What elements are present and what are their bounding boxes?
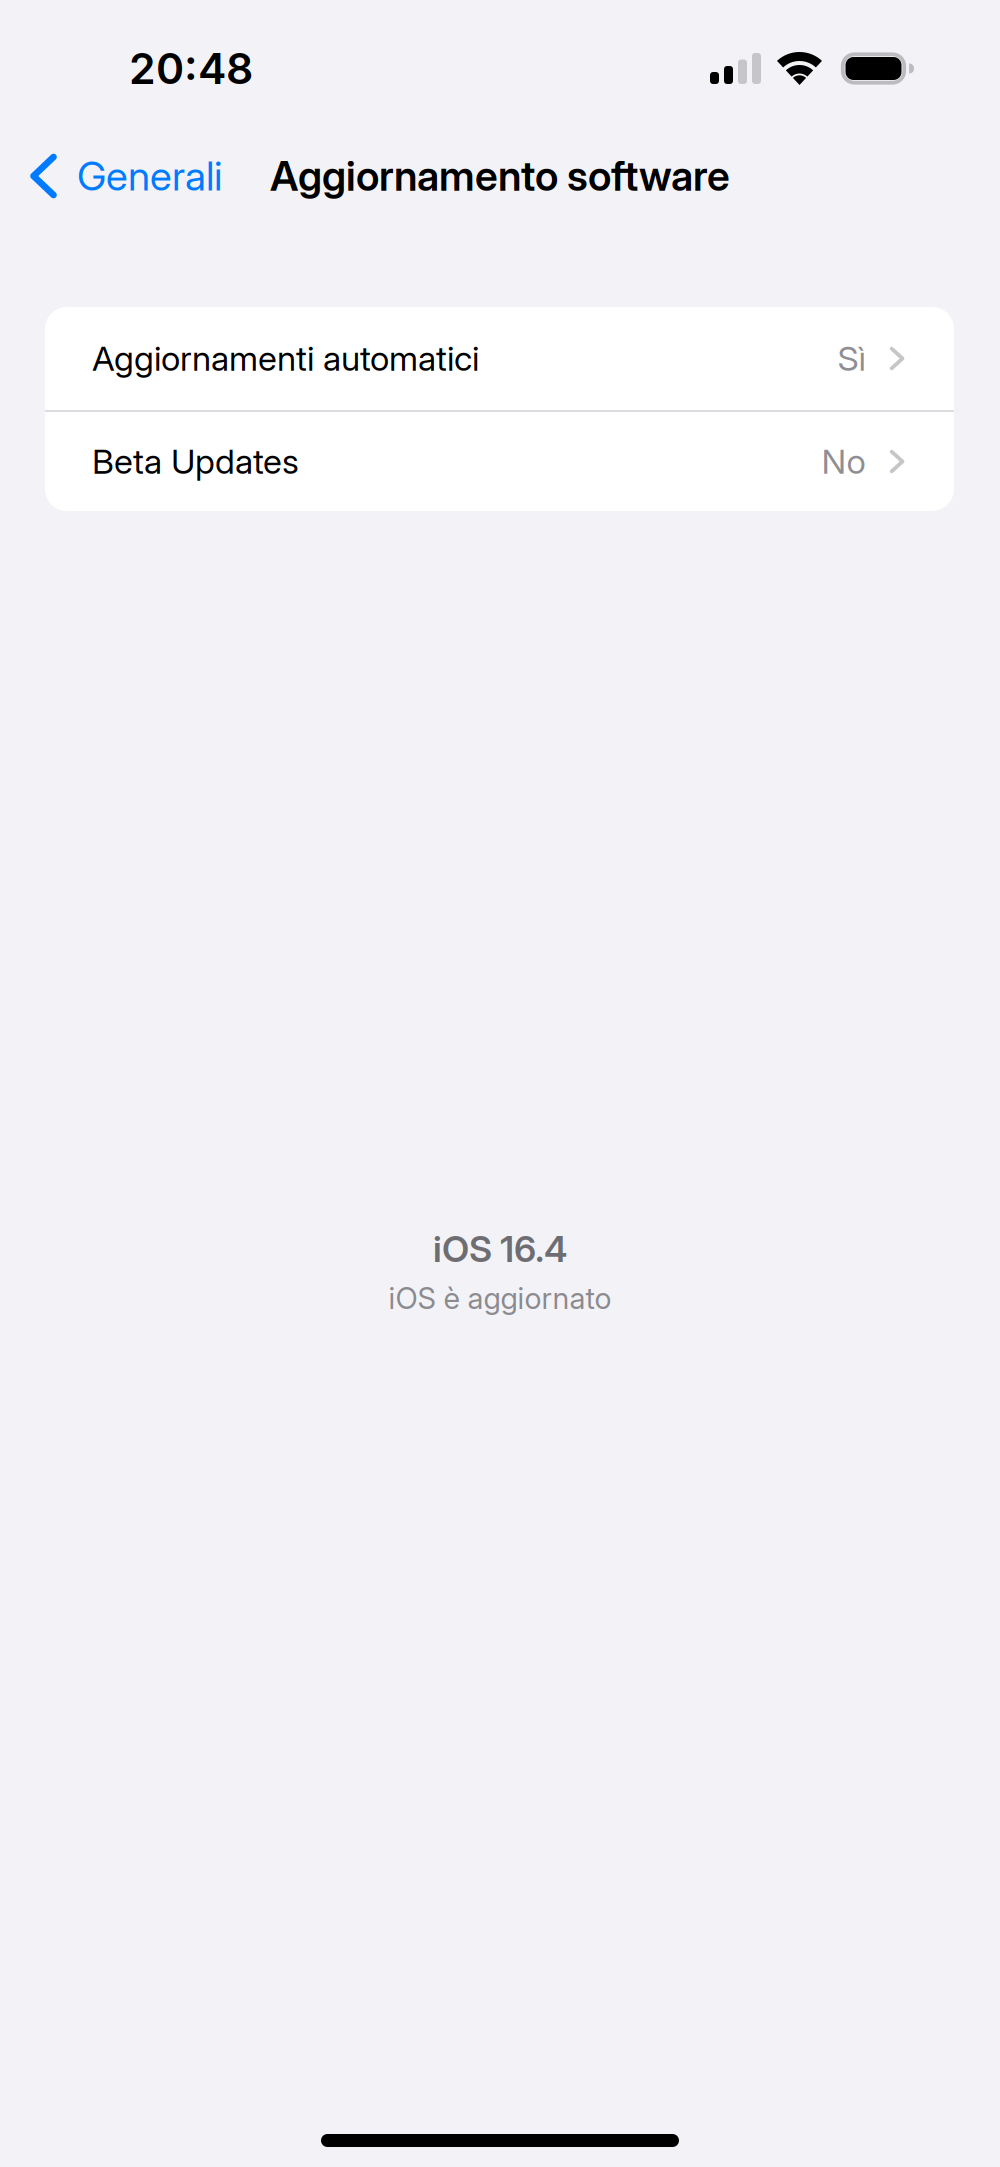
button[interactable]: Generali (0, 130, 238, 222)
button[interactable]: Aggiornamenti automatici (45, 307, 954, 410)
staticText: Beta Updates (92, 441, 299, 482)
button[interactable]: Beta Updates (45, 412, 954, 511)
staticText: iOS 16.4 (433, 1227, 567, 1271)
staticText: Sì (837, 338, 865, 379)
staticText: 20:48 (129, 43, 253, 94)
staticText: Generali (77, 152, 222, 200)
staticText: Aggiornamenti automatici (92, 338, 479, 379)
staticText: No (821, 441, 865, 482)
staticText: iOS è aggiornato (388, 1281, 611, 1316)
staticText: Aggiornamento software (270, 151, 730, 201)
